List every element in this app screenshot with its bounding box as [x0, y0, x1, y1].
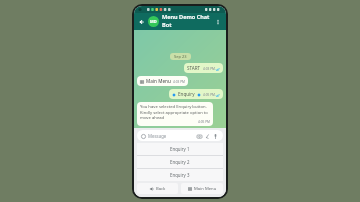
staticText: You have selected Enquiry button. Kindly…	[140, 104, 210, 120]
staticText: START	[187, 65, 201, 71]
staticText: 4:03 PM	[203, 67, 215, 71]
button[interactable]: Camera	[196, 133, 202, 139]
staticText: Enquiry 1	[170, 146, 190, 152]
staticText: Back	[156, 186, 166, 192]
button[interactable]: Enquiry 3	[137, 169, 223, 181]
button[interactable]: Emoji	[137, 130, 223, 141]
staticText: Main Menu	[194, 186, 217, 192]
button[interactable]: MD	[148, 16, 159, 27]
button[interactable]: More options	[213, 17, 223, 27]
button[interactable]: Enquiry 1	[137, 143, 223, 155]
button[interactable]: Attach	[204, 133, 210, 139]
staticText: Sep 23	[174, 54, 187, 59]
button[interactable]: START	[184, 63, 223, 73]
button[interactable]: Main Menu	[137, 76, 188, 86]
staticText: Menu Demo Chat Bot	[162, 13, 213, 29]
button[interactable]: Main Menu	[181, 183, 223, 194]
staticText: Message	[148, 133, 167, 139]
staticText: 4:03 PM	[173, 80, 185, 84]
button[interactable]: Back	[137, 183, 178, 194]
button[interactable]: Emoji	[140, 133, 146, 139]
staticText: Main Menu	[146, 78, 171, 84]
staticText: Enquiry 2	[170, 159, 190, 165]
button[interactable]: You have selected Enquiry button. Kindly…	[137, 102, 213, 126]
staticText: Enquiry 3	[170, 172, 190, 178]
staticText: Enquiry	[178, 91, 195, 97]
button[interactable]: Voice message	[212, 133, 218, 139]
staticText: 4:05 PM	[203, 93, 215, 97]
button[interactable]: Enquiry 2	[137, 156, 223, 168]
staticText: MD	[150, 19, 157, 24]
button[interactable]: Menu Demo Chat Bot	[162, 13, 213, 30]
staticText: 4:05 PM	[198, 120, 210, 124]
button[interactable]: Enquiry	[169, 89, 223, 99]
button[interactable]: Back	[137, 17, 147, 27]
